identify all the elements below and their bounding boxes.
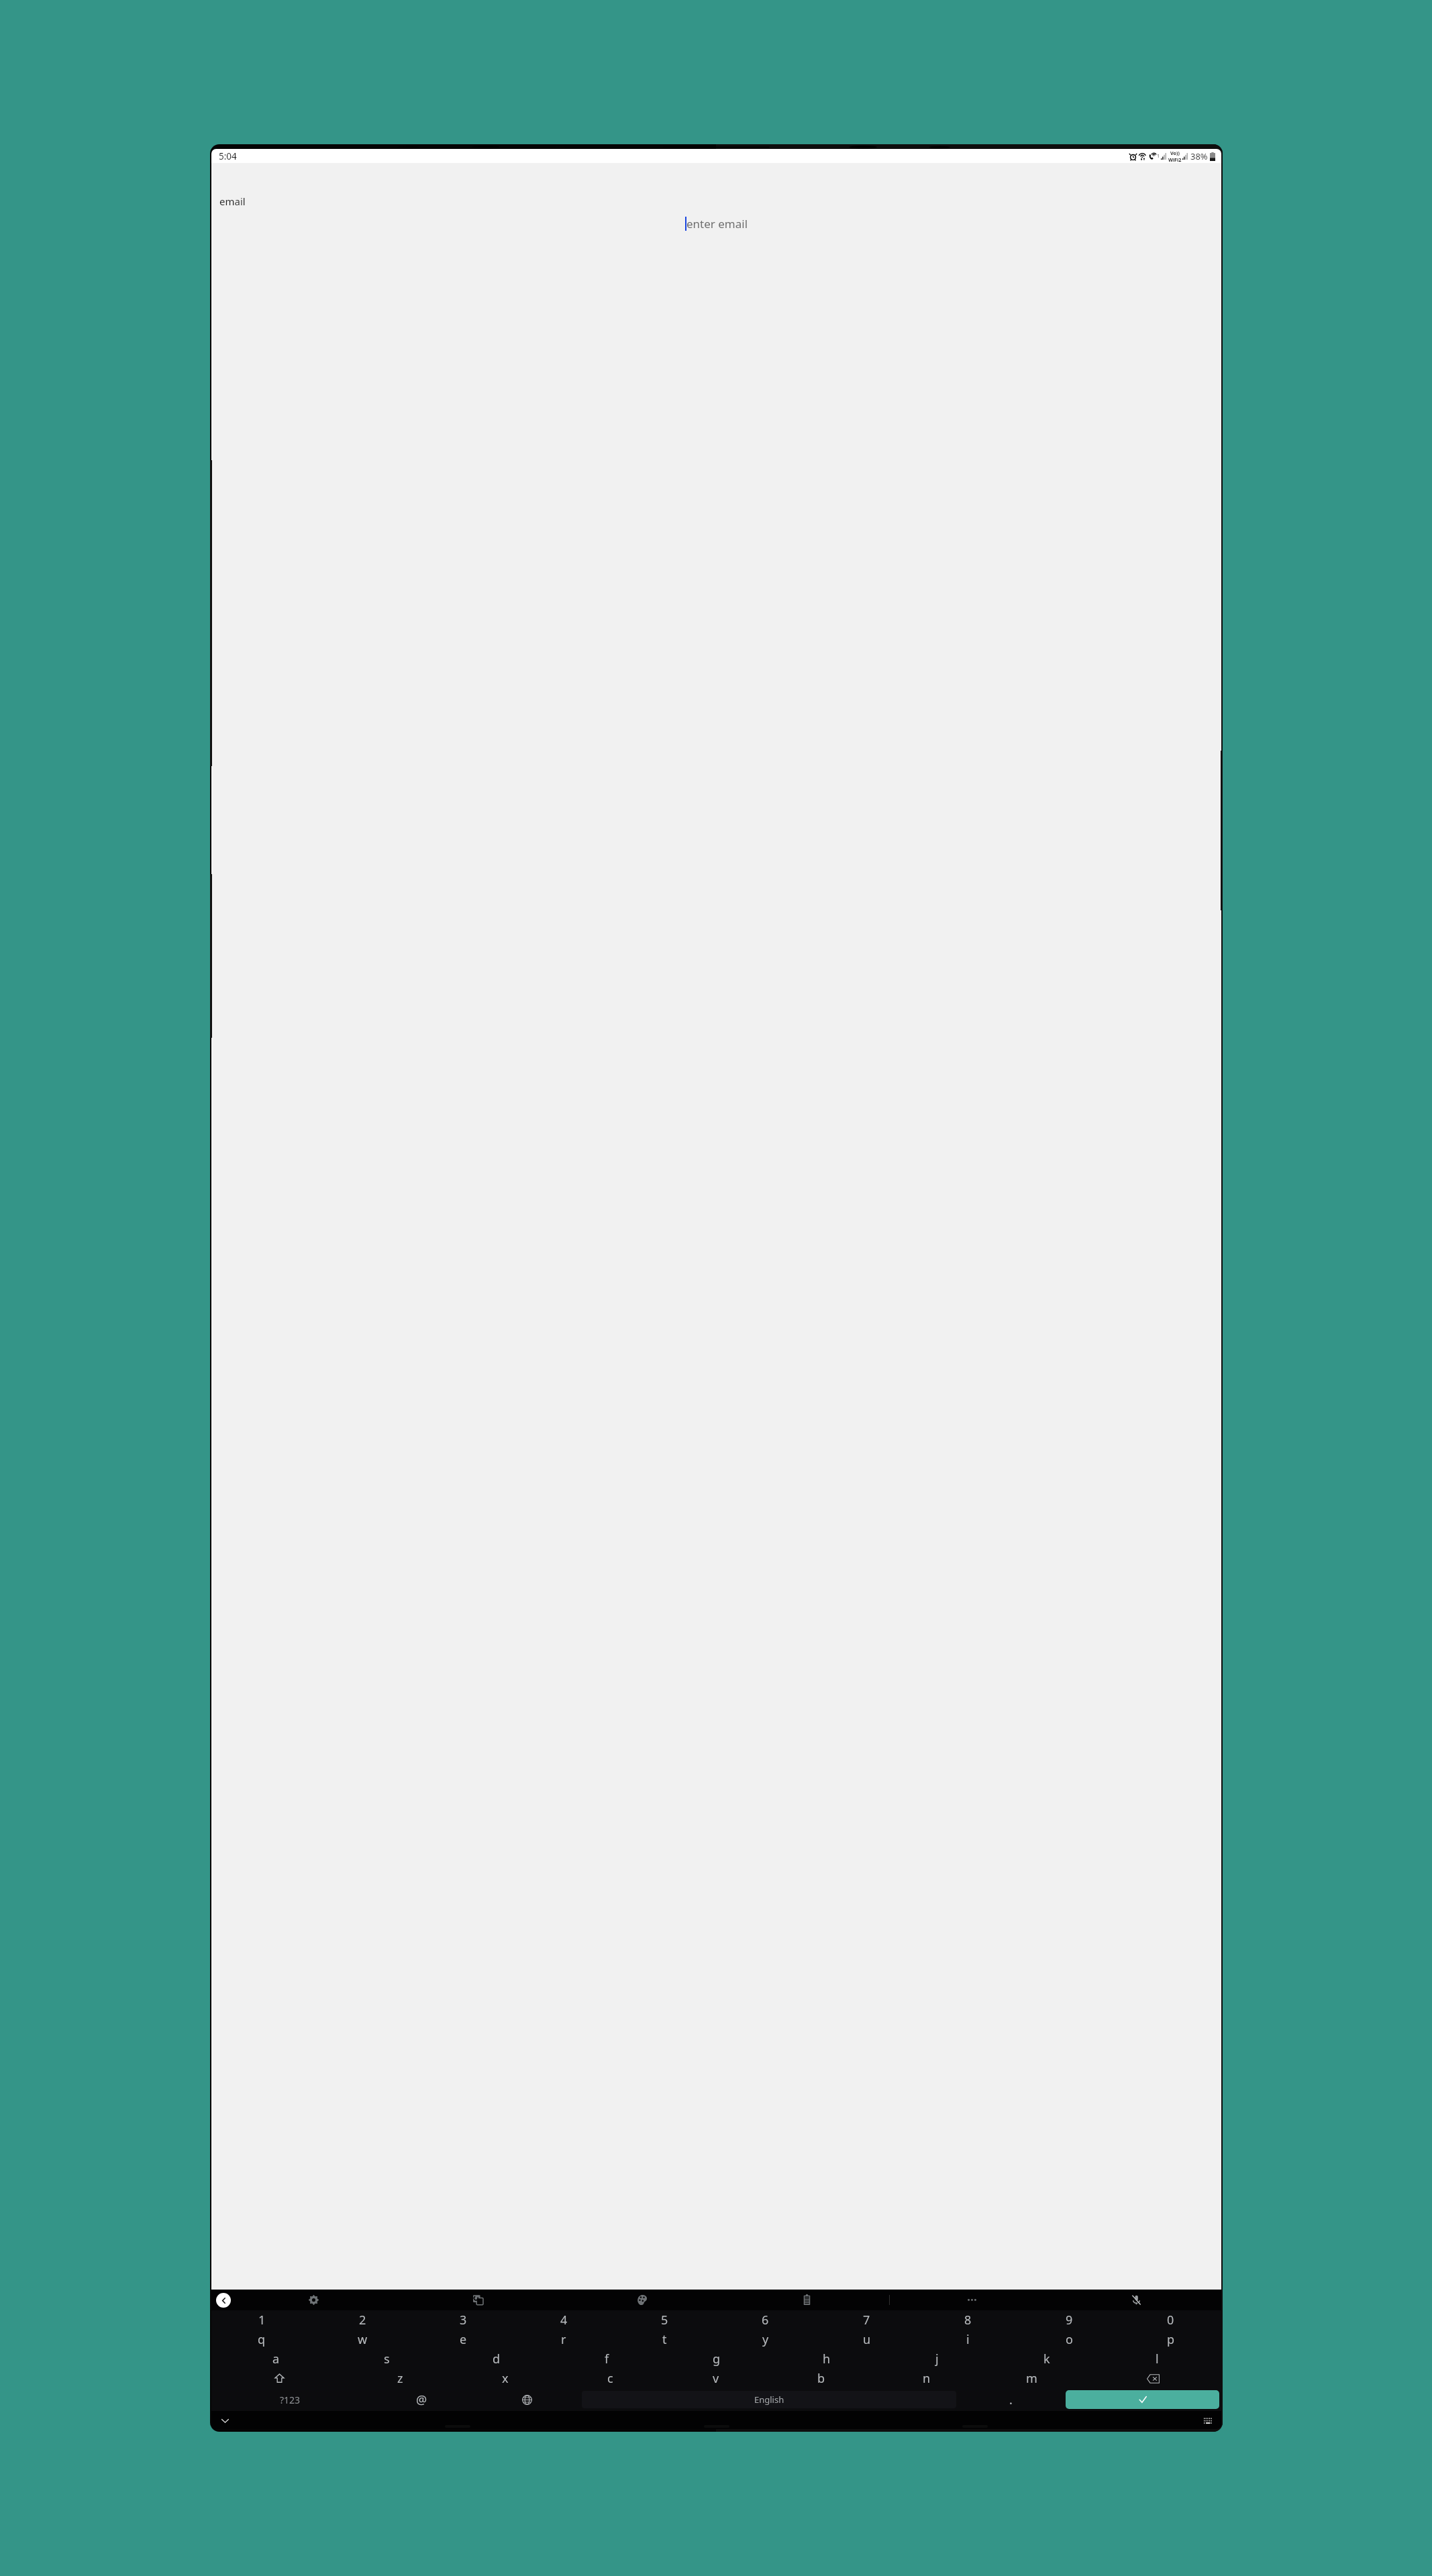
staticText: z: [397, 2370, 403, 2387]
button[interactable]: q: [211, 2330, 312, 2349]
staticText: 5:04: [219, 150, 237, 162]
button[interactable]: r: [513, 2330, 614, 2349]
staticText: 2: [359, 2312, 366, 2328]
button[interactable]: Shift: [211, 2369, 348, 2388]
button[interactable]: i: [917, 2330, 1019, 2349]
staticText: t: [662, 2331, 667, 2348]
button[interactable]: h: [772, 2349, 882, 2369]
button[interactable]: v: [663, 2369, 768, 2388]
button[interactable]: @: [369, 2388, 474, 2411]
staticText: d: [493, 2351, 501, 2367]
button[interactable]: g: [662, 2349, 772, 2369]
staticText: 8: [964, 2312, 972, 2328]
staticText: m: [1026, 2370, 1037, 2387]
button[interactable]: k: [992, 2349, 1102, 2369]
staticText: 1: [258, 2312, 266, 2328]
staticText: x: [502, 2370, 509, 2387]
staticText: r: [561, 2331, 566, 2348]
staticText: v: [713, 2370, 719, 2387]
button[interactable]: 4: [513, 2310, 614, 2330]
staticText: a: [272, 2351, 280, 2367]
button[interactable]: b: [768, 2369, 874, 2388]
button[interactable]: 6: [715, 2310, 816, 2330]
button[interactable]: d: [442, 2349, 552, 2369]
button[interactable]: 9: [1019, 2310, 1120, 2330]
staticText: i: [966, 2331, 970, 2348]
staticText: 1: [1157, 153, 1160, 160]
staticText: 5: [661, 2312, 668, 2328]
button[interactable]: j: [882, 2349, 992, 2369]
staticText: w: [358, 2331, 368, 2348]
staticText: 6: [762, 2312, 769, 2328]
staticText: 9: [1066, 2312, 1073, 2328]
button[interactable]: Settings: [231, 2290, 396, 2310]
button[interactable]: w: [312, 2330, 413, 2349]
button[interactable]: e: [413, 2330, 513, 2349]
button[interactable]: Themes: [560, 2290, 725, 2310]
button[interactable]: a: [221, 2349, 331, 2369]
button[interactable]: Translate: [396, 2290, 560, 2310]
staticText: k: [1043, 2351, 1050, 2367]
button[interactable]: f: [552, 2349, 662, 2369]
button[interactable]: n: [874, 2369, 979, 2388]
staticText: 4: [560, 2312, 568, 2328]
button[interactable]: x: [452, 2369, 558, 2388]
button[interactable]: m: [979, 2369, 1084, 2388]
staticText: 38%: [1190, 150, 1208, 162]
staticText: b: [817, 2370, 825, 2387]
button[interactable]: u: [816, 2330, 917, 2349]
button[interactable]: 0: [1120, 2310, 1221, 2330]
button[interactable]: l: [1102, 2349, 1212, 2369]
staticText: s: [384, 2351, 390, 2367]
button[interactable]: Change language: [474, 2388, 580, 2411]
button[interactable]: 5: [614, 2310, 715, 2330]
button[interactable]: .: [958, 2388, 1064, 2411]
staticText: 7: [863, 2312, 870, 2328]
staticText: enter email: [686, 216, 748, 231]
button[interactable]: c: [558, 2369, 663, 2388]
staticText: p: [1167, 2331, 1175, 2348]
staticText: ?123: [280, 2394, 301, 2406]
button[interactable]: 3: [413, 2310, 513, 2330]
staticText: l: [1156, 2351, 1159, 2367]
button[interactable]: t: [614, 2330, 715, 2349]
staticText: n: [923, 2370, 931, 2387]
button[interactable]: s: [331, 2349, 442, 2369]
staticText: f: [605, 2351, 609, 2367]
staticText: y: [762, 2331, 769, 2348]
button[interactable]: z: [348, 2369, 452, 2388]
button[interactable]: 1: [211, 2310, 312, 2330]
staticText: English: [754, 2394, 784, 2406]
staticText: @: [416, 2392, 427, 2408]
button[interactable]: ?123: [211, 2388, 369, 2411]
button[interactable]: More options: [890, 2290, 1054, 2310]
staticText: 0: [1167, 2312, 1174, 2328]
button[interactable]: y: [715, 2330, 816, 2349]
button[interactable]: Backspace: [1084, 2369, 1221, 2388]
button[interactable]: Clipboard: [725, 2290, 889, 2310]
staticText: q: [258, 2331, 266, 2348]
button[interactable]: Back: [216, 2293, 231, 2308]
button[interactable]: 2: [312, 2310, 413, 2330]
staticText: WiFi2: [1168, 156, 1182, 163]
staticText: email: [219, 195, 246, 208]
staticText: o: [1066, 2331, 1073, 2348]
staticText: .: [1009, 2392, 1013, 2408]
button[interactable]: Voice input off: [1054, 2290, 1219, 2310]
staticText: Vo)): [1170, 150, 1180, 156]
button[interactable]: p: [1120, 2330, 1221, 2349]
button[interactable]: Switch keyboard: [1200, 2412, 1216, 2428]
button[interactable]: Hide keyboard: [217, 2412, 233, 2428]
staticText: 3: [460, 2312, 467, 2328]
button[interactable]: 7: [816, 2310, 917, 2330]
staticText: h: [823, 2351, 831, 2367]
staticText: c: [607, 2370, 613, 2387]
staticText: e: [460, 2331, 467, 2348]
button[interactable]: 8: [917, 2310, 1019, 2330]
staticText: g: [713, 2351, 721, 2367]
button[interactable]: o: [1019, 2330, 1120, 2349]
staticText: j: [935, 2351, 939, 2367]
button[interactable]: Done: [1066, 2390, 1219, 2409]
staticText: u: [863, 2331, 871, 2348]
button[interactable]: English: [582, 2391, 956, 2408]
